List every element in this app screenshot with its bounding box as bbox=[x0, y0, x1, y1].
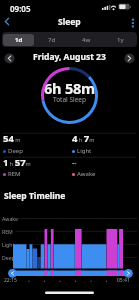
staticText: Sleep Timeline bbox=[4, 190, 66, 202]
staticText: Awake bbox=[2, 215, 18, 222]
staticText: Awake bbox=[77, 170, 96, 178]
staticText: Light bbox=[2, 241, 15, 248]
staticText: 7d bbox=[48, 36, 56, 44]
staticText: 09:05 bbox=[10, 3, 31, 14]
button[interactable] bbox=[125, 53, 135, 63]
staticText: 22:15 bbox=[4, 277, 17, 284]
staticText: 05:41 bbox=[117, 277, 130, 284]
button[interactable]: 1y bbox=[103, 32, 137, 47]
button[interactable]: REM bbox=[3, 170, 21, 178]
button[interactable]: 7d bbox=[35, 32, 69, 47]
button[interactable] bbox=[4, 53, 14, 63]
staticText: 4w bbox=[82, 36, 91, 44]
staticText: Deep bbox=[2, 254, 15, 261]
button[interactable] bbox=[127, 15, 139, 27]
staticText: 1y bbox=[117, 36, 124, 44]
staticText: 1d bbox=[15, 36, 23, 44]
staticText: REM bbox=[8, 170, 21, 178]
button[interactable]: 54 m bbox=[3, 132, 21, 145]
button[interactable]: 1d bbox=[2, 32, 35, 47]
button[interactable]: Light bbox=[72, 147, 92, 155]
button[interactable]: 4w bbox=[69, 32, 103, 47]
staticText: -- bbox=[72, 158, 77, 168]
staticText: 6h 58m bbox=[44, 78, 96, 98]
staticText: Deep bbox=[8, 147, 23, 155]
staticText: Sleep bbox=[58, 16, 81, 27]
staticText: Friday, August 23 bbox=[33, 51, 106, 63]
button[interactable]: Awake bbox=[72, 170, 96, 178]
button[interactable]: 1 h 57m bbox=[3, 156, 31, 169]
staticText: REM bbox=[2, 228, 13, 235]
button[interactable] bbox=[2, 15, 14, 27]
staticText: Light bbox=[77, 147, 92, 155]
button[interactable]: 4 h 7m bbox=[72, 132, 95, 145]
button[interactable]: Deep bbox=[3, 147, 23, 155]
staticText: Total Sleep bbox=[53, 95, 87, 104]
